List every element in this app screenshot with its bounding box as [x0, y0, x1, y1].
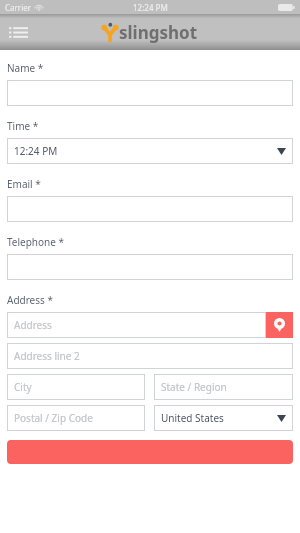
button[interactable]: Address line 2 — [7, 343, 293, 369]
button[interactable]: Input field — [7, 196, 293, 222]
button[interactable]: Submit — [7, 440, 293, 464]
button[interactable]: Address — [7, 312, 266, 338]
staticText: Time * — [7, 119, 39, 133]
staticText: Name * — [7, 61, 44, 75]
button[interactable]: Menu — [3, 17, 33, 47]
button[interactable]: Postal / Zip Code — [7, 405, 145, 431]
staticText: Postal / Zip Code — [14, 411, 93, 425]
staticText: slingshot — [119, 21, 198, 44]
staticText: United States — [161, 411, 224, 425]
staticText: 12:24 PM — [14, 144, 58, 158]
button[interactable]: 12:24 PM — [7, 138, 293, 164]
staticText: Address — [14, 318, 52, 332]
button[interactable]: Locate address on map — [266, 312, 293, 338]
staticText: State / Region — [161, 380, 227, 394]
button[interactable]: Input field — [7, 80, 293, 106]
staticText: City — [14, 380, 32, 394]
staticText: Telephone * — [7, 235, 65, 249]
button[interactable]: State / Region — [154, 374, 293, 400]
staticText: Address line 2 — [14, 349, 80, 363]
button[interactable]: City — [7, 374, 145, 400]
button[interactable]: Input field — [7, 254, 293, 280]
staticText: Email * — [7, 177, 41, 191]
staticText: Address * — [7, 293, 53, 307]
staticText: 12:24 PM — [133, 2, 168, 13]
staticText: Carrier — [5, 2, 32, 13]
button[interactable]: United States — [154, 405, 293, 431]
